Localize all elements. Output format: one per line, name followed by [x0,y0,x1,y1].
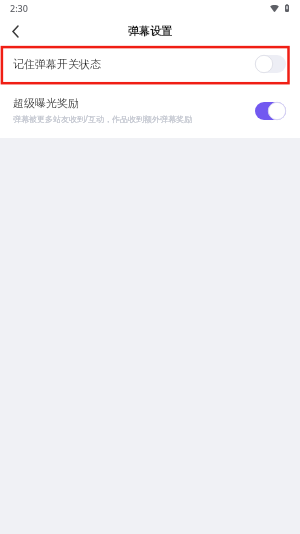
staticText: 2:30 [10,2,28,14]
button[interactable]: 开启 [255,102,286,120]
staticText: 弹幕被更多站友收到/互动，作品收到额外弹幕奖励 [13,113,192,124]
button[interactable]: 记住弹幕开关状态 [0,46,300,81]
staticText: 弹幕设置 [128,24,172,38]
button[interactable]: 关闭 [255,55,286,73]
staticText: 超级曝光奖励 [13,96,79,110]
button[interactable]: 超级曝光奖励 [0,81,300,138]
staticText: 记住弹幕开关状态 [13,57,101,71]
button[interactable]: Back [3,19,27,43]
